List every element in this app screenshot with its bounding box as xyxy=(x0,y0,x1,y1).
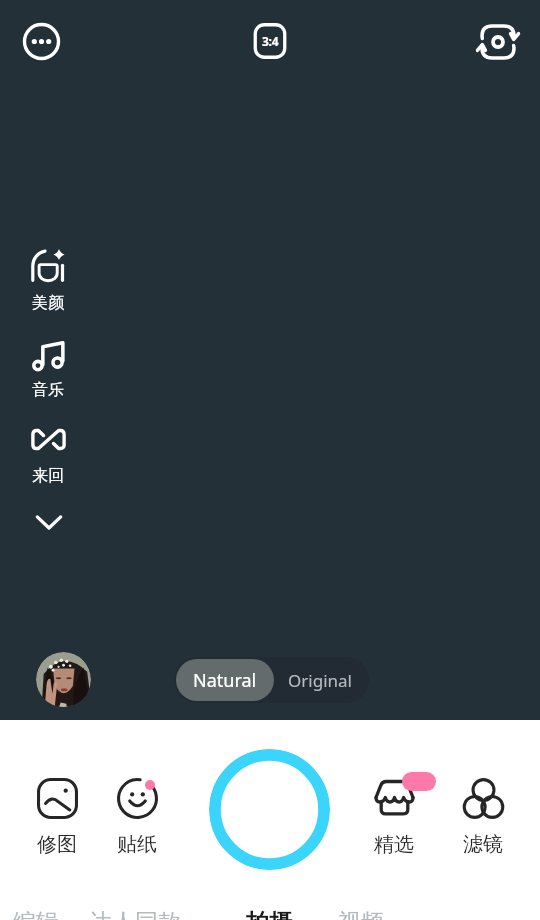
staticText: 来回 xyxy=(32,466,64,486)
staticText: 3:4 xyxy=(262,33,279,49)
button[interactable]: 精选 xyxy=(360,772,428,864)
button[interactable]: 拍摄 xyxy=(236,908,302,920)
staticText: 拍摄 xyxy=(246,908,292,920)
button[interactable]: 3:4 xyxy=(248,18,292,64)
button[interactable]: 滤镜 xyxy=(449,772,517,864)
button[interactable]: Expand tools xyxy=(26,499,71,544)
staticText: 修图 xyxy=(37,832,77,857)
button[interactable]: Natural xyxy=(176,659,274,701)
button[interactable]: Shutter xyxy=(209,749,330,870)
button[interactable]: 来回 xyxy=(18,418,78,489)
button[interactable]: 音乐 xyxy=(18,332,78,403)
button[interactable]: 美颜 xyxy=(18,245,78,316)
button[interactable]: 编辑 xyxy=(3,908,69,920)
staticText: 达人同款 xyxy=(89,908,181,920)
staticText: 贴纸 xyxy=(117,832,157,857)
staticText: Original xyxy=(288,669,352,692)
staticText: 精选 xyxy=(374,832,414,857)
button[interactable]: 修图 xyxy=(23,772,91,864)
staticText: 音乐 xyxy=(32,380,64,400)
staticText: 滤镜 xyxy=(463,832,503,857)
button[interactable]: 贴纸 xyxy=(103,772,171,864)
staticText: Natural xyxy=(193,668,257,693)
staticText: 美颜 xyxy=(32,293,64,313)
staticText: 视频 xyxy=(338,908,384,920)
button[interactable]: Switch camera xyxy=(474,18,522,66)
button[interactable]: Original xyxy=(276,659,369,701)
button[interactable]: 达人同款 xyxy=(79,908,191,920)
button[interactable]: Profile photo xyxy=(36,652,91,707)
button[interactable]: More options xyxy=(18,18,65,65)
staticText: 编辑 xyxy=(13,908,59,920)
button[interactable]: 视频 xyxy=(328,908,394,920)
